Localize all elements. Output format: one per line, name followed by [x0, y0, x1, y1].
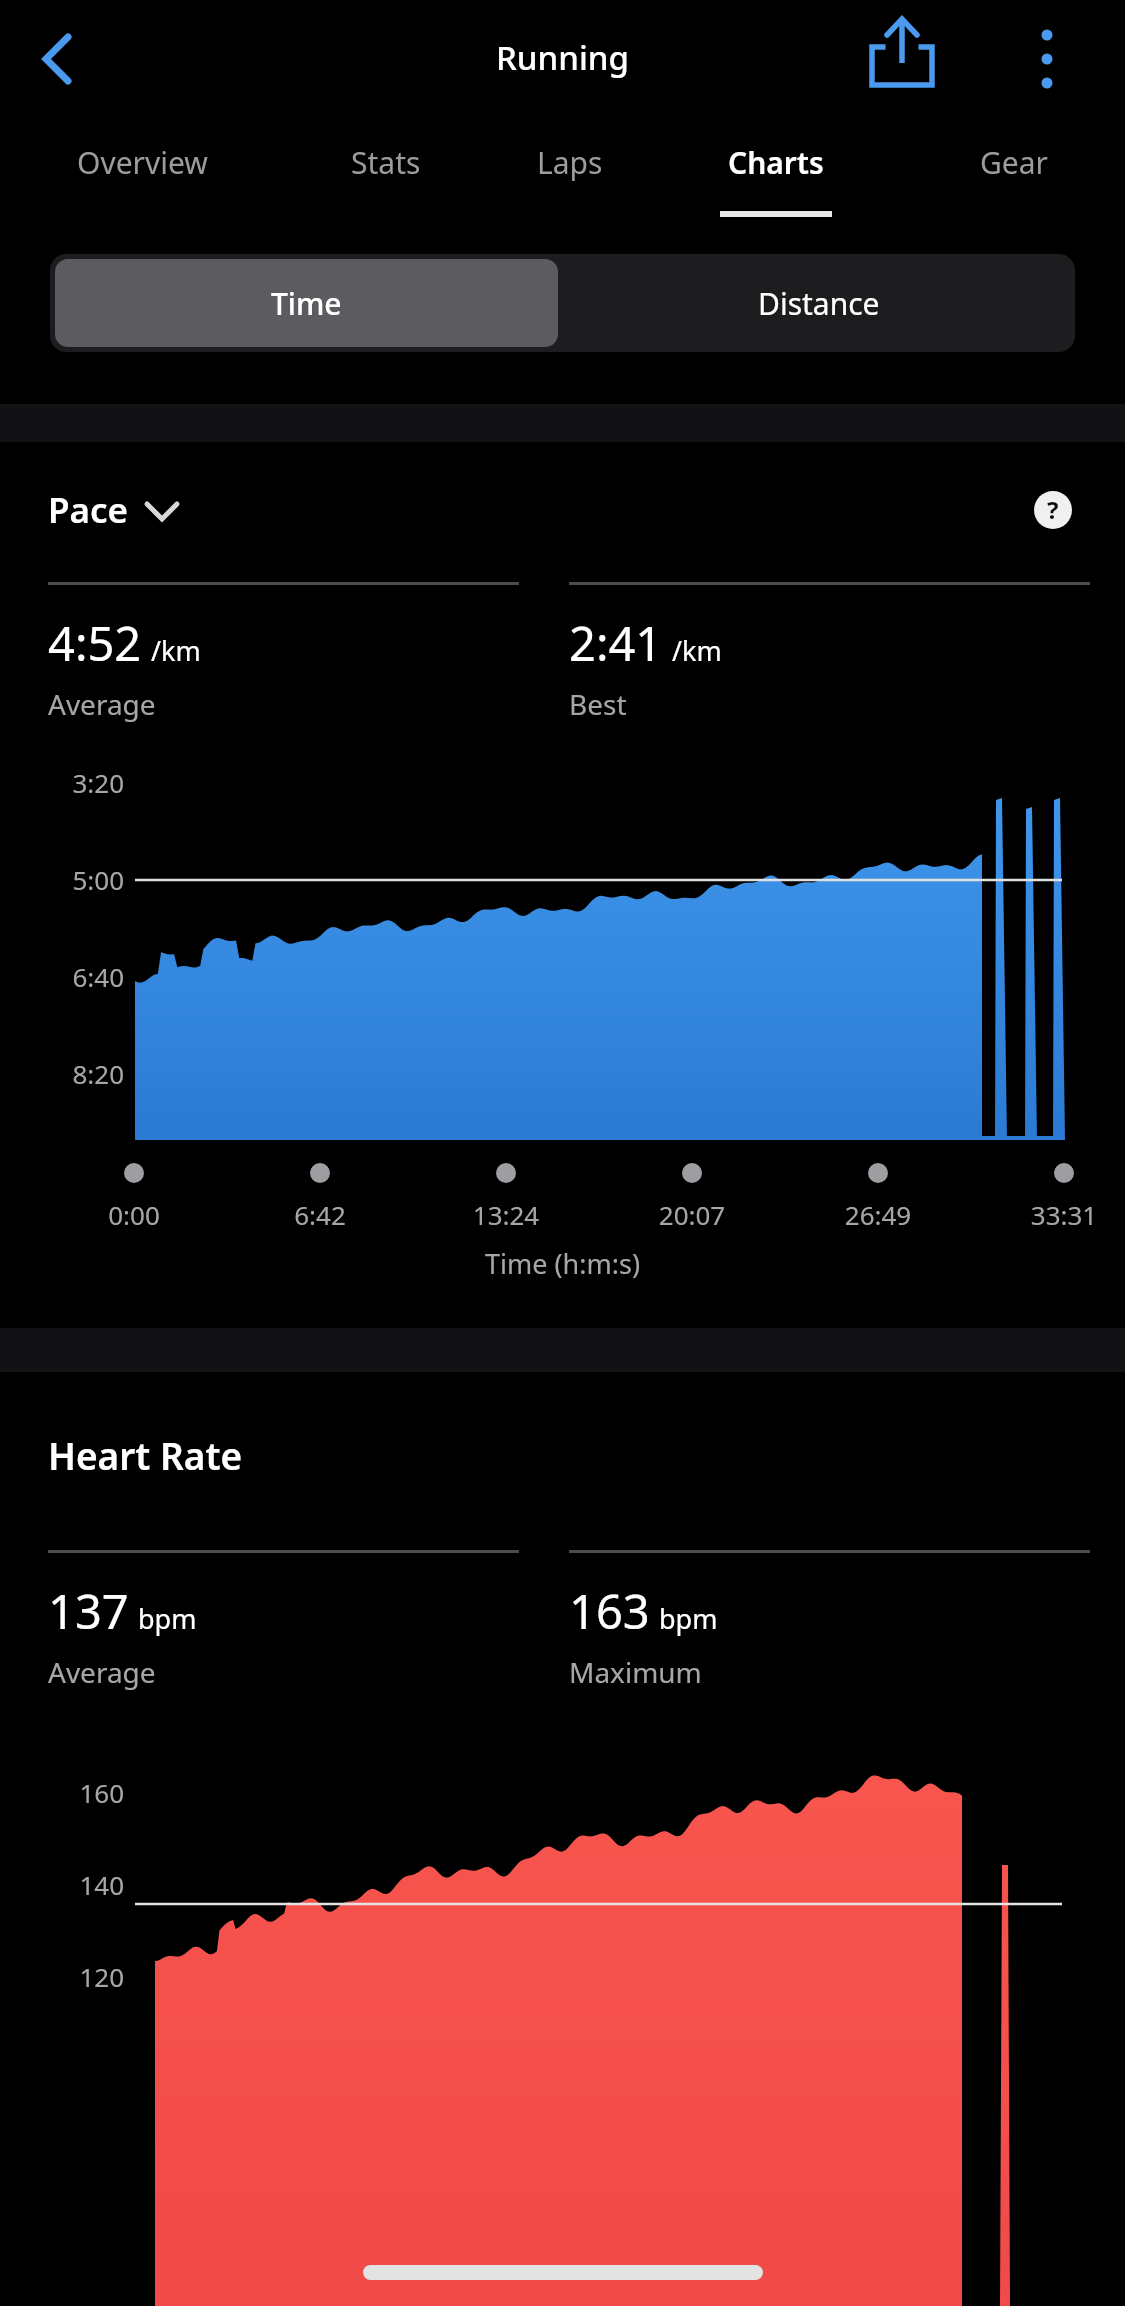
staticText: /km — [151, 632, 201, 669]
staticText: Time (h:m:s) — [0, 1245, 1125, 1282]
staticText: 13:24 — [426, 1197, 586, 1232]
button[interactable]: More options — [1009, 21, 1085, 97]
staticText: Laps — [537, 142, 603, 183]
staticText: 6:42 — [240, 1197, 400, 1232]
button[interactable]: Pace — [48, 486, 179, 534]
staticText: bpm — [659, 1600, 718, 1637]
staticText: Average — [48, 685, 156, 723]
staticText: Overview — [77, 142, 208, 183]
staticText: 163 — [569, 1579, 650, 1643]
staticText: bpm — [138, 1600, 197, 1637]
button[interactable]: Help — [1029, 486, 1077, 534]
staticText: Distance — [758, 283, 880, 324]
button[interactable]: Laps — [465, 118, 675, 240]
staticText: 6:40 — [38, 959, 124, 994]
staticText: 0:00 — [54, 1197, 214, 1232]
staticText: ? — [1047, 493, 1059, 526]
staticText: 3:20 — [38, 765, 124, 800]
staticText: 4:52 — [48, 611, 142, 675]
staticText: /km — [672, 632, 722, 669]
staticText: Stats — [351, 142, 421, 183]
staticText: 120 — [38, 1959, 124, 1994]
staticText: Maximum — [569, 1653, 702, 1691]
staticText: Best — [569, 685, 627, 723]
staticText: 33:31 — [984, 1197, 1125, 1232]
staticText: 2:41 — [569, 611, 663, 675]
staticText: 26:49 — [798, 1197, 958, 1232]
staticText: 5:00 — [38, 862, 124, 897]
staticText: Charts — [728, 142, 824, 183]
staticText: 137 — [48, 1579, 129, 1643]
staticText: 20:07 — [612, 1197, 772, 1232]
button[interactable]: Stats — [281, 118, 491, 240]
staticText: Heart Rate — [48, 1430, 243, 1480]
button[interactable]: Time — [55, 259, 558, 347]
staticText: Time — [271, 283, 342, 324]
button[interactable]: Distance — [562, 254, 1075, 352]
staticText: Running — [496, 35, 629, 80]
button[interactable]: Back — [18, 20, 96, 98]
staticText: Pace — [48, 486, 129, 534]
staticText: 8:20 — [38, 1056, 124, 1091]
button[interactable]: Share — [864, 21, 940, 97]
staticText: Average — [48, 1653, 156, 1691]
button[interactable]: Charts — [671, 118, 881, 240]
staticText: Gear — [980, 142, 1048, 183]
staticText: 140 — [38, 1867, 124, 1902]
button[interactable]: Gear — [909, 118, 1119, 240]
staticText: 160 — [38, 1775, 124, 1810]
button[interactable]: Overview — [37, 118, 247, 240]
